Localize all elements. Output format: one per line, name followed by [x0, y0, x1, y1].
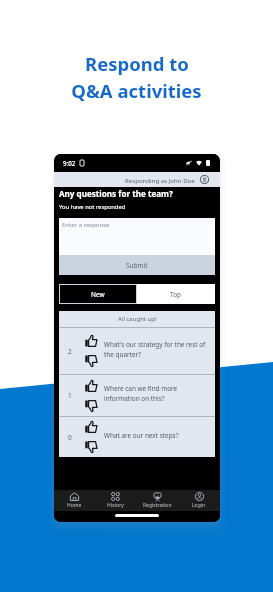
staticText: Top [170, 290, 182, 299]
button[interactable]: Upvote [85, 421, 97, 433]
button[interactable]: Upvote [85, 380, 97, 392]
staticText: What are our next steps? [104, 431, 179, 440]
button[interactable]: Top [137, 284, 215, 304]
button[interactable]: Registration [136, 490, 178, 511]
staticText: 9:02 [63, 159, 76, 167]
staticText: Q&A activities [71, 78, 202, 103]
button[interactable]: 2 [59, 328, 215, 374]
staticText: New [91, 290, 105, 299]
staticText: Submit [126, 261, 148, 270]
button[interactable]: Home [54, 490, 95, 511]
button[interactable]: 0 [59, 417, 215, 457]
staticText: Enter a response [62, 221, 110, 229]
button[interactable]: Login [178, 490, 220, 511]
button[interactable]: Downvote [85, 400, 97, 412]
button[interactable]: Submit [59, 255, 215, 275]
button[interactable]: 1 [59, 375, 215, 416]
staticText: Any questions for the team? [59, 188, 173, 199]
staticText: Where can we find more information on th… [104, 384, 206, 403]
staticText: Home [67, 502, 82, 509]
button[interactable]: Upvote [85, 335, 97, 347]
staticText: You have not responded [59, 203, 126, 211]
button[interactable]: Enter a response [59, 218, 215, 255]
staticText: History [107, 502, 124, 509]
staticText: Responding as John Doe [125, 176, 195, 184]
staticText: 1 [68, 391, 72, 400]
staticText: Login [192, 502, 206, 509]
staticText: 0 [68, 433, 72, 442]
button[interactable]: History [95, 490, 136, 511]
button[interactable]: Downvote [85, 355, 97, 367]
staticText: 2 [68, 347, 72, 356]
button[interactable]: Account [200, 175, 209, 184]
staticText: Registration [143, 502, 172, 509]
staticText: What's our strategy for the rest of the … [104, 340, 206, 359]
staticText: All caught up! [118, 315, 157, 323]
button[interactable]: Downvote [85, 441, 97, 453]
staticText: Respond to [85, 51, 189, 76]
button[interactable]: New [59, 284, 137, 304]
